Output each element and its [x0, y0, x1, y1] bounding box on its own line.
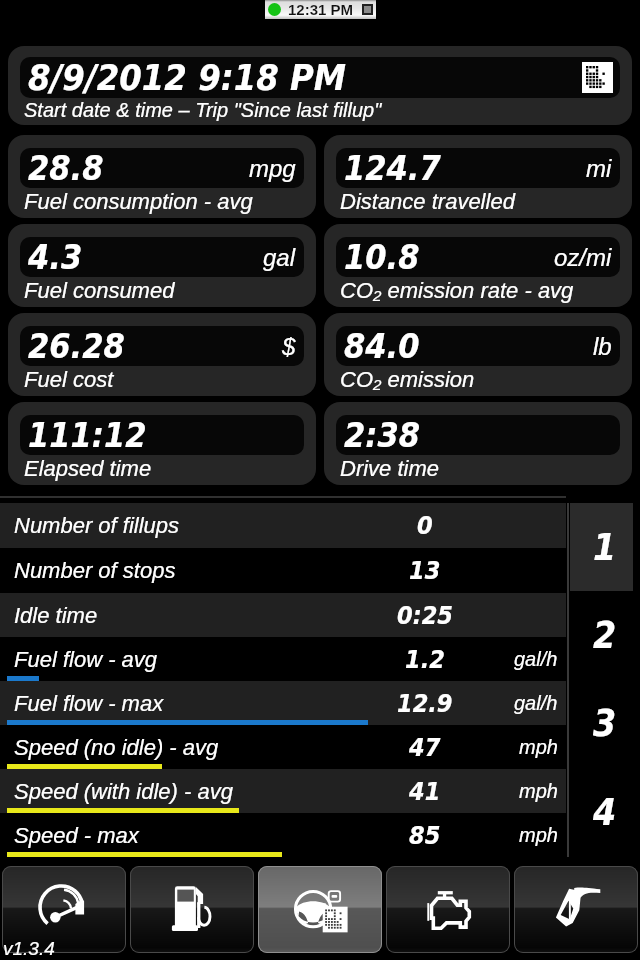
staticText: 12:31 PM	[288, 1, 354, 18]
staticText: 0	[417, 511, 433, 540]
button[interactable]: Fillups	[514, 866, 638, 953]
button[interactable]: Fuel	[130, 866, 254, 953]
staticText: Speed (with idle) - avg	[14, 779, 233, 804]
button[interactable]: Dashboard	[2, 866, 126, 953]
button[interactable]: Speed (with idle) - avg	[0, 769, 566, 813]
button[interactable]: 28.8	[8, 135, 316, 218]
button[interactable]: Number of fillups	[0, 503, 566, 548]
staticText: Fuel consumed	[24, 278, 175, 303]
button[interactable]: Fuel flow - max	[0, 681, 566, 725]
button[interactable]: 4.3	[8, 224, 316, 307]
button[interactable]: 84.0	[324, 313, 632, 396]
button[interactable]: Speed (no idle) - avg	[0, 725, 566, 769]
staticText: 12.9	[397, 689, 453, 718]
staticText: 2:38	[344, 415, 421, 455]
staticText: 4	[593, 791, 617, 834]
button[interactable]: 3	[570, 679, 640, 768]
staticText: Idle time	[14, 603, 98, 628]
staticText: Start date & time – Trip "Since last fil…	[24, 99, 382, 121]
staticText: 1	[593, 526, 617, 569]
staticText: lb	[593, 333, 612, 360]
button[interactable]: 124.7	[324, 135, 632, 218]
staticText: Fuel flow - max	[14, 691, 164, 716]
button[interactable]: Diagnostics	[386, 866, 510, 953]
staticText: 10.8	[344, 237, 420, 277]
staticText: 84.0	[344, 326, 420, 366]
staticText: 124.7	[344, 148, 441, 188]
staticText: Fuel consumption - avg	[24, 189, 253, 214]
staticText: mpg	[249, 155, 296, 182]
staticText: oz/mi	[554, 244, 612, 271]
staticText: 4.3	[28, 237, 83, 277]
button[interactable]: Idle time	[0, 593, 566, 637]
staticText: 85	[409, 821, 441, 850]
button[interactable]: 10.8	[324, 224, 632, 307]
staticText: mph	[519, 824, 558, 846]
staticText: 2	[593, 614, 617, 657]
button[interactable]: 2	[570, 591, 640, 679]
staticText: gal	[263, 244, 296, 271]
button[interactable]: 2:38	[324, 402, 632, 485]
button[interactable]: 1	[570, 503, 640, 591]
staticText: 13	[409, 556, 441, 585]
staticText: Number of stops	[14, 558, 176, 583]
staticText: 1.2	[405, 645, 445, 674]
staticText: v1.3.4	[3, 938, 55, 959]
staticText: Speed - max	[14, 823, 139, 848]
button[interactable]: 26.28	[8, 313, 316, 396]
button[interactable]: Speed - max	[0, 813, 566, 857]
staticText: 8/9/2012 9:18 PM	[28, 57, 346, 98]
staticText: Number of fillups	[14, 513, 180, 538]
staticText: gal/h	[514, 648, 558, 670]
staticText: Elapsed time	[24, 456, 152, 481]
staticText: 26.28	[28, 326, 125, 366]
staticText: Fuel cost	[24, 367, 114, 392]
staticText: 41	[409, 777, 441, 806]
button[interactable]: 111:12	[8, 402, 316, 485]
staticText: 0:25	[397, 601, 453, 630]
staticText: 47	[409, 733, 441, 762]
staticText: Distance travelled	[340, 189, 515, 214]
button[interactable]: Trip computer	[258, 866, 382, 953]
staticText: mph	[519, 736, 558, 758]
staticText: CO₂ emission	[340, 367, 475, 392]
staticText: Fuel flow - avg	[14, 647, 158, 672]
staticText: mi	[586, 155, 612, 182]
staticText: CO₂ emission rate - avg	[340, 278, 574, 303]
staticText: $	[282, 333, 296, 360]
staticText: mph	[519, 780, 558, 802]
staticText: 3	[593, 702, 617, 745]
staticText: 28.8	[28, 148, 104, 188]
button[interactable]: 4	[570, 768, 640, 857]
staticText: gal/h	[514, 692, 558, 714]
button[interactable]: Number of stops	[0, 548, 566, 593]
staticText: 111:12	[28, 415, 147, 455]
button[interactable]: Fuel flow - avg	[0, 637, 566, 681]
staticText: Drive time	[340, 456, 440, 481]
button[interactable]: 8/9/2012 9:18 PM	[8, 46, 632, 125]
staticText: Speed (no idle) - avg	[14, 735, 219, 760]
